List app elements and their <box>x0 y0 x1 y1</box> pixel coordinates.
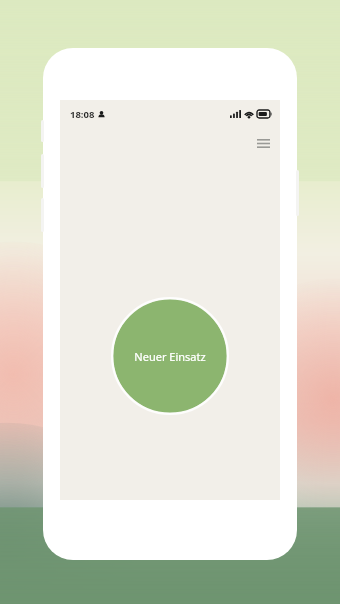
staticText: 18:08 <box>70 108 95 121</box>
button[interactable]: Neuer Einsatz <box>113 299 227 413</box>
button[interactable]: Menü <box>252 132 274 154</box>
staticText: Neuer Einsatz <box>134 349 206 364</box>
